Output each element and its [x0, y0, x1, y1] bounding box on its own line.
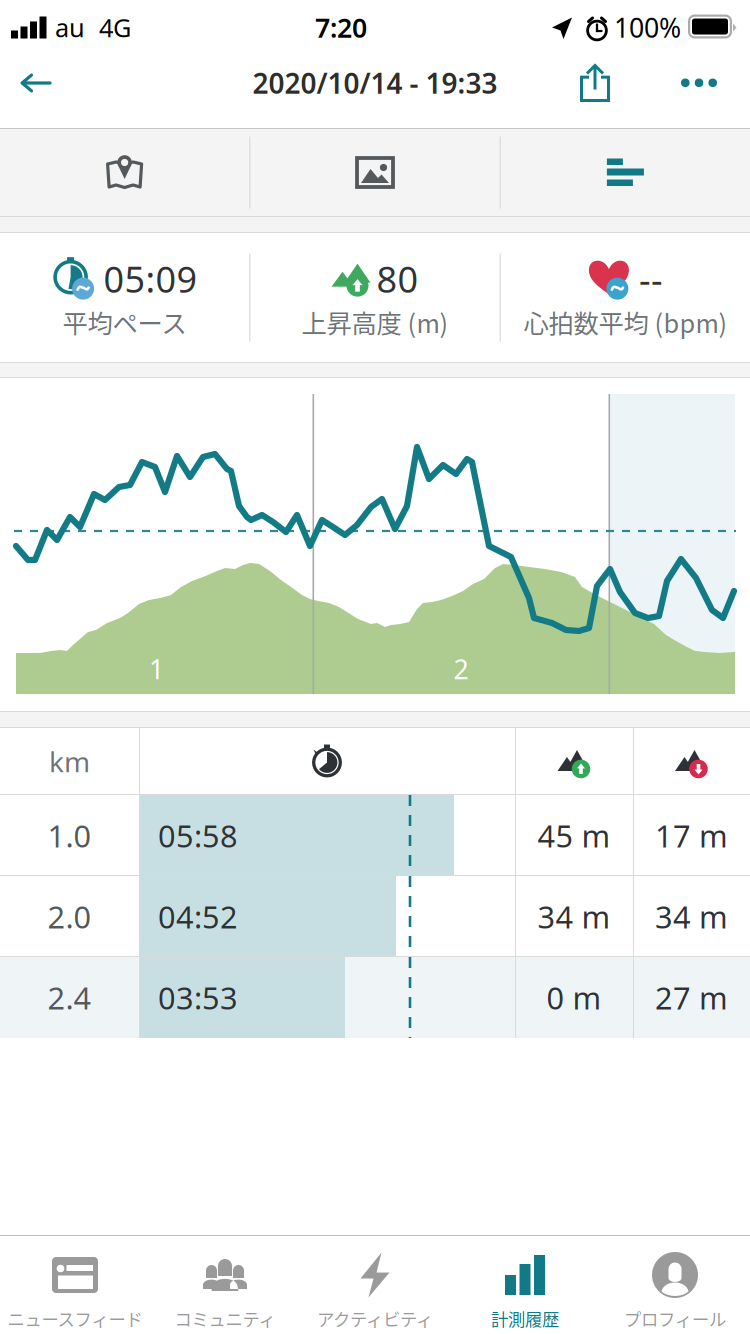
staticText: コミュニティ: [174, 1306, 275, 1331]
staticText: 7:20: [315, 10, 367, 45]
staticText: 05:58: [158, 815, 238, 856]
button[interactable]: ニュースフィード: [0, 1235, 150, 1334]
button[interactable]: プロフィール: [600, 1235, 750, 1334]
staticText: --: [639, 255, 663, 303]
button[interactable]: アクティビティ: [300, 1235, 450, 1334]
staticText: 0 m: [546, 977, 601, 1018]
staticText: 上昇高度 (m): [301, 304, 448, 340]
button[interactable]: Photos: [250, 129, 500, 216]
button[interactable]: More: [664, 55, 734, 111]
staticText: 34 m: [537, 896, 610, 937]
staticText: プロフィール: [624, 1306, 726, 1331]
staticText: 平均ペース: [63, 304, 187, 340]
button[interactable]: Back: [0, 55, 72, 111]
staticText: 2.0: [47, 896, 91, 937]
button[interactable]: Map: [0, 129, 249, 216]
staticText: 2020/10/14 - 19:33: [252, 64, 497, 102]
staticText: 05:09: [104, 255, 198, 303]
staticText: 1.0: [47, 815, 91, 856]
staticText: 27 m: [655, 977, 728, 1018]
staticText: 04:52: [158, 896, 238, 937]
staticText: au: [55, 11, 85, 44]
staticText: 17 m: [655, 815, 728, 856]
staticText: 計測履歴: [491, 1306, 559, 1331]
staticText: 03:53: [158, 977, 238, 1018]
button[interactable]: コミュニティ: [150, 1235, 300, 1334]
staticText: km: [49, 743, 90, 780]
staticText: 心拍数平均 (bpm): [523, 304, 727, 340]
button[interactable]: Splits: [501, 129, 750, 216]
staticText: 80: [376, 255, 418, 303]
staticText: 1: [149, 651, 164, 687]
staticText: 100%: [614, 10, 681, 45]
button[interactable]: Share: [526, 55, 664, 111]
staticText: 34 m: [655, 896, 728, 937]
staticText: ニュースフィード: [7, 1306, 142, 1331]
staticText: 2.4: [47, 977, 91, 1018]
button[interactable]: 計測履歴: [450, 1235, 600, 1334]
staticText: 45 m: [537, 815, 610, 856]
staticText: 2: [453, 651, 468, 687]
staticText: 4G: [99, 11, 131, 44]
staticText: アクティビティ: [317, 1306, 433, 1331]
